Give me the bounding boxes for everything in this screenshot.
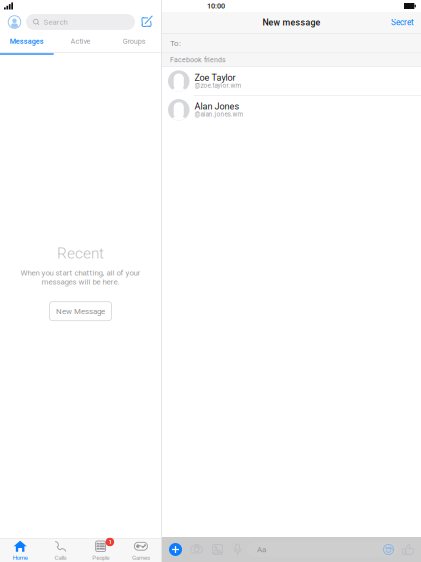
staticText: Calls bbox=[54, 554, 66, 561]
button[interactable]: 1 bbox=[80, 539, 121, 562]
button[interactable]: Aa bbox=[247, 542, 398, 557]
staticText: New Message bbox=[56, 307, 105, 316]
button[interactable]: Profile bbox=[3, 13, 26, 30]
staticText: Search bbox=[43, 17, 67, 27]
button[interactable]: Send a like bbox=[398, 538, 418, 560]
button[interactable]: Calls bbox=[40, 539, 80, 562]
staticText: @zoe.taylor.wm bbox=[194, 82, 241, 89]
button[interactable]: More options bbox=[165, 538, 186, 560]
button[interactable]: Alan Jones bbox=[162, 96, 421, 124]
staticText: 1 bbox=[108, 538, 111, 546]
staticText: @alan.jones.wm bbox=[194, 111, 243, 118]
staticText: 10:00 bbox=[207, 2, 225, 10]
staticText: Groups bbox=[123, 37, 146, 45]
staticText: Games bbox=[132, 554, 150, 561]
staticText: Secret bbox=[391, 18, 414, 27]
staticText: Active bbox=[70, 37, 90, 45]
button[interactable]: Search bbox=[26, 14, 135, 30]
staticText: To: bbox=[170, 38, 181, 48]
staticText: New message bbox=[262, 17, 320, 28]
button[interactable]: Secret bbox=[391, 18, 421, 27]
staticText: Aa bbox=[257, 545, 266, 554]
staticText: People bbox=[92, 554, 109, 561]
staticText: Home bbox=[13, 554, 28, 561]
button[interactable]: New message bbox=[135, 13, 158, 30]
button[interactable]: New Message bbox=[49, 302, 111, 321]
button[interactable]: Active bbox=[54, 32, 107, 52]
staticText: messages will be here. bbox=[41, 277, 119, 286]
button[interactable]: Photos bbox=[207, 538, 228, 560]
button[interactable]: Groups bbox=[107, 32, 161, 52]
staticText: Zoe Taylor bbox=[194, 72, 235, 83]
staticText: Messages bbox=[10, 37, 44, 45]
button[interactable]: Home bbox=[0, 539, 40, 562]
button[interactable]: Camera bbox=[186, 538, 207, 560]
button[interactable]: Zoe Taylor bbox=[162, 67, 421, 95]
button[interactable]: Messages bbox=[0, 32, 54, 52]
button[interactable]: Games bbox=[121, 539, 161, 562]
staticText: Facebook friends bbox=[170, 56, 226, 64]
staticText: When you start chatting, all of your bbox=[20, 268, 140, 277]
staticText: Recent bbox=[57, 244, 104, 262]
staticText: Alan Jones bbox=[194, 101, 239, 112]
